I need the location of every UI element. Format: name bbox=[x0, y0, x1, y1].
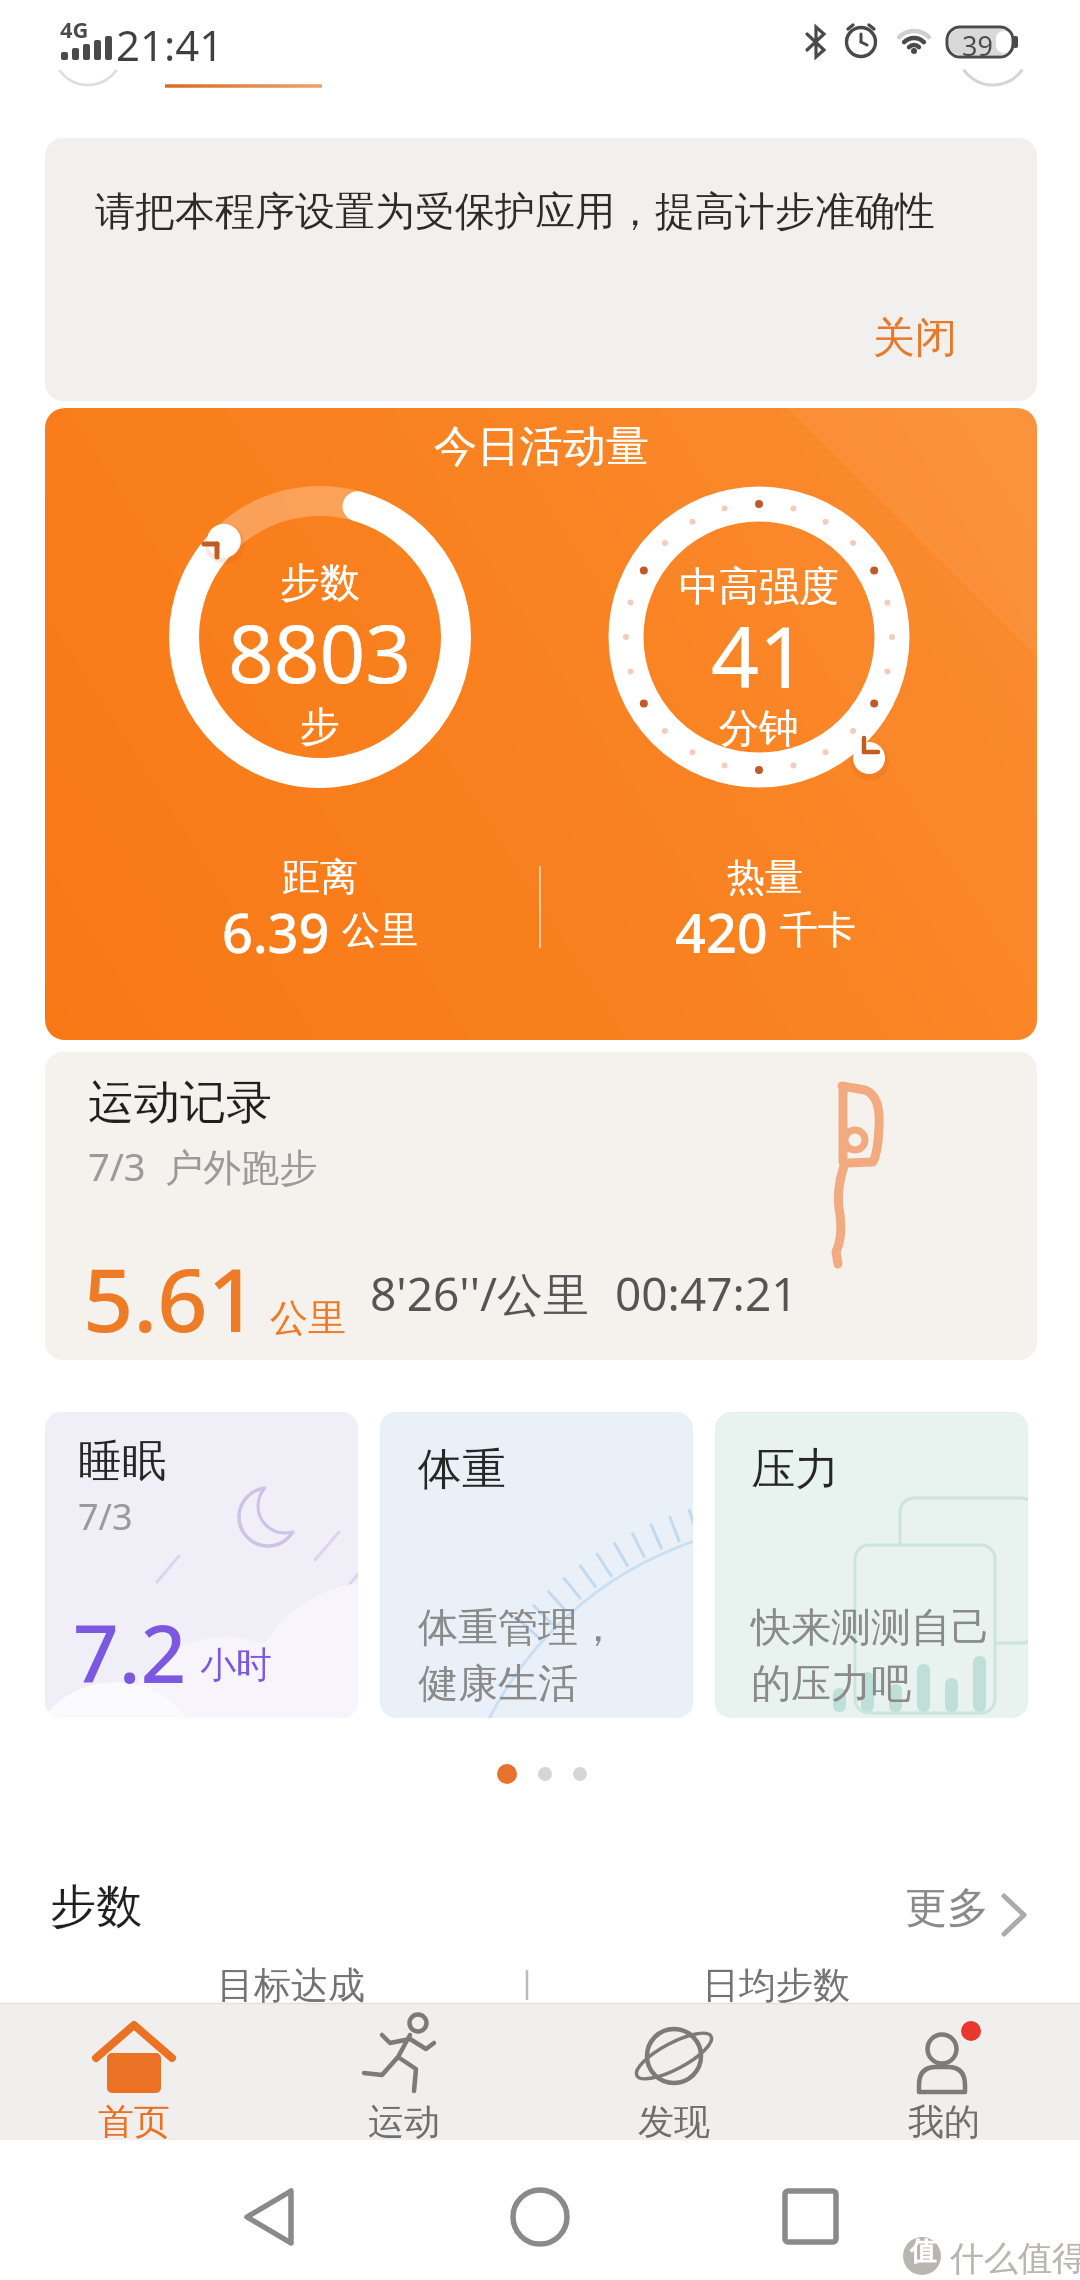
staticText: 更多 bbox=[905, 1882, 989, 1935]
staticText: 我的 bbox=[908, 2099, 980, 2144]
staticText: 39 bbox=[962, 27, 993, 64]
staticText: 7.2 bbox=[73, 1597, 187, 1706]
staticText: 8'26''/公里 bbox=[370, 1262, 590, 1325]
button[interactable]: 发现 bbox=[604, 2003, 744, 2140]
staticText: 的压力吧 bbox=[751, 1658, 911, 1708]
staticText: 分钟 bbox=[719, 703, 799, 753]
staticText: 日均步数 bbox=[702, 1962, 850, 2009]
staticText: 公里 bbox=[270, 1294, 346, 1342]
staticText: 420 bbox=[675, 895, 768, 965]
staticText: 4G bbox=[60, 14, 89, 44]
staticText: 5.61 bbox=[83, 1238, 258, 1358]
staticText: 距离 bbox=[282, 853, 358, 901]
staticText: 步数 bbox=[280, 557, 360, 607]
staticText: 体重 bbox=[418, 1442, 506, 1497]
staticText: 首页 bbox=[98, 2099, 170, 2144]
button[interactable] bbox=[735, 2165, 885, 2275]
staticText: 热量 bbox=[727, 853, 803, 901]
staticText: 7/3 户外跑步 bbox=[88, 1140, 318, 1192]
staticText: 健康生活 bbox=[418, 1658, 578, 1708]
staticText: 7/3 bbox=[78, 1492, 133, 1541]
staticText: 中高强度 bbox=[679, 561, 839, 611]
button[interactable]: 首页 bbox=[64, 2003, 204, 2140]
staticText: 今日活动量 bbox=[434, 420, 649, 474]
staticText: 8803 bbox=[228, 597, 412, 706]
staticText: 00:47:21 bbox=[615, 1262, 798, 1325]
button[interactable]: 我的 bbox=[874, 2003, 1014, 2140]
button[interactable]: 睡眠 bbox=[45, 1412, 358, 1718]
staticText: 睡眠 bbox=[78, 1434, 166, 1489]
staticText: 发现 bbox=[638, 2099, 710, 2144]
staticText: 小时 bbox=[200, 1642, 272, 1687]
button[interactable] bbox=[465, 2165, 615, 2275]
staticText: 值 bbox=[910, 2235, 936, 2268]
staticText: 41 bbox=[711, 598, 808, 712]
button[interactable]: 运动 bbox=[334, 2003, 474, 2140]
button[interactable]: 关闭 bbox=[830, 298, 1000, 378]
staticText: 步数 bbox=[50, 1878, 142, 1936]
staticText: 千卡 bbox=[780, 906, 856, 954]
staticText: 目标达成 bbox=[217, 1962, 365, 2009]
staticText: 步 bbox=[300, 701, 340, 751]
staticText: 6.39 bbox=[222, 895, 330, 965]
staticText: 压力 bbox=[751, 1442, 839, 1497]
staticText: 什么值得买 bbox=[950, 2237, 1080, 2280]
staticText: 运动 bbox=[368, 2099, 440, 2144]
button[interactable]: 体重 bbox=[380, 1412, 693, 1718]
staticText: 快来测测自己 bbox=[751, 1602, 991, 1652]
staticText: 21:41 bbox=[116, 16, 224, 73]
button[interactable]: 今日活动量 bbox=[45, 408, 1037, 1040]
button[interactable]: 更多 bbox=[880, 1876, 1040, 1940]
staticText: 公里 bbox=[342, 906, 418, 954]
button[interactable]: 运动记录 bbox=[45, 1052, 1037, 1360]
button[interactable] bbox=[195, 2165, 345, 2275]
staticText: 请把本程序设置为受保护应用，提高计步准确性 bbox=[95, 186, 935, 236]
staticText: 关闭 bbox=[873, 312, 957, 365]
button[interactable]: 压力 bbox=[715, 1412, 1028, 1718]
staticText: 运动记录 bbox=[88, 1074, 272, 1132]
staticText: 体重管理， bbox=[418, 1602, 618, 1652]
